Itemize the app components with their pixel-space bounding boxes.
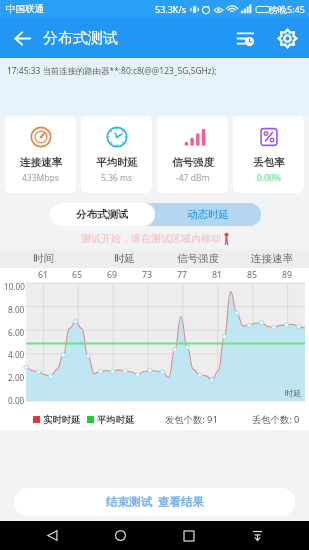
staticText: 61 [38, 269, 49, 281]
button[interactable]: 分布式测试 [49, 203, 155, 226]
button[interactable]: 结束测试 查看结果 [14, 488, 295, 516]
staticText: 丢包个数: 0 [252, 413, 300, 426]
button[interactable]: 平均时延 [81, 116, 152, 193]
staticText: 时间 [33, 252, 54, 265]
button[interactable]: Settings [272, 23, 302, 53]
staticText: 傍晚5:45 [269, 3, 305, 15]
button[interactable]: Back [36, 521, 68, 550]
staticText: 信号强度 [172, 156, 214, 169]
staticText: 10.00 [4, 281, 25, 292]
button[interactable]: Back [8, 24, 36, 52]
staticText: 5.36 ms [101, 172, 133, 184]
button[interactable]: 动态时延 [155, 203, 261, 226]
button[interactable]: 信号强度 [157, 116, 228, 193]
staticText: 分布式测试 [43, 29, 118, 48]
button[interactable]: History [230, 23, 260, 53]
staticText: 时延 [285, 388, 302, 398]
staticText: 发包个数: 91 [165, 413, 218, 426]
button[interactable]: Hide navigation bar [241, 521, 273, 550]
staticText: 77 [177, 269, 188, 281]
button[interactable]: 丢包率 [233, 116, 304, 193]
staticText: 4.00 [8, 349, 25, 360]
button[interactable]: Home [104, 521, 136, 550]
staticText: 分布式测试 [76, 208, 129, 221]
staticText: 实时时延 [43, 414, 81, 426]
staticText: 连接速率 [20, 156, 62, 169]
staticText: 中国联通 [6, 3, 44, 15]
staticText: -47 dBm [176, 172, 210, 184]
staticText: 69 [107, 269, 118, 281]
staticText: 0.00% [257, 172, 281, 184]
staticText: 85 [247, 269, 258, 281]
staticText: 结束测试 查看结果 [106, 494, 204, 510]
staticText: 8.00 [8, 304, 25, 315]
staticText: 平均时延 [97, 414, 135, 426]
staticText: 时延 [114, 252, 135, 265]
button[interactable]: 连接速率 [5, 116, 76, 193]
staticText: 0.00 [8, 395, 25, 406]
staticText: 65 [72, 269, 83, 281]
staticText: 81 [212, 269, 223, 281]
staticText: 信号强度 [177, 252, 219, 265]
staticText: 6.00 [8, 327, 25, 338]
staticText: 89 [282, 269, 293, 281]
staticText: 53.3K/s [155, 3, 187, 15]
button[interactable]: Recents [173, 521, 205, 550]
staticText: 动态时延 [187, 208, 229, 221]
staticText: 丢包率 [253, 156, 285, 169]
staticText: 17:45:33 当前连接的路由器**:80:c8(@@123_5G,5GHz)… [7, 65, 217, 76]
staticText: 测试开始，请在测试区域内移动 [81, 232, 221, 245]
staticText: 平均时延 [96, 156, 138, 169]
staticText: 73 [142, 269, 153, 281]
staticText: 连接速率 [251, 252, 293, 265]
staticText: 2.00 [8, 372, 25, 383]
staticText: 433Mbps [22, 172, 59, 184]
